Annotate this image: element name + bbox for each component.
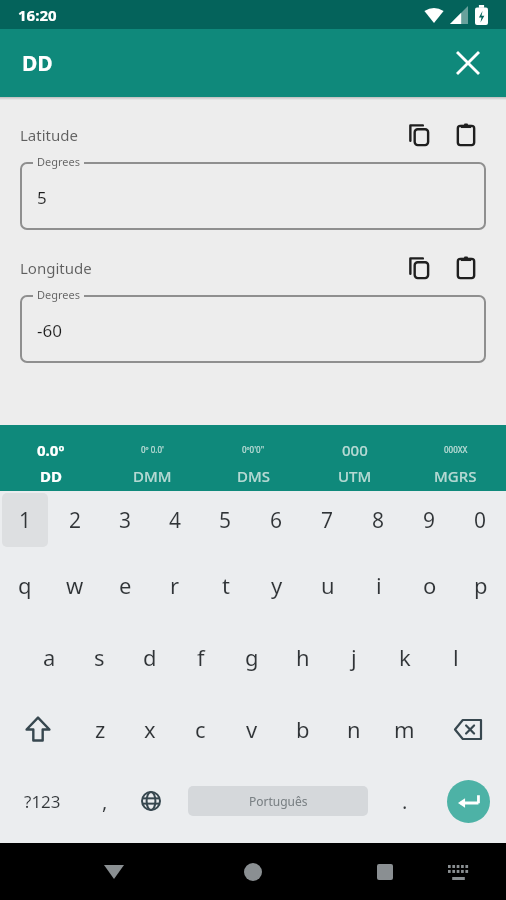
button[interactable]: n — [328, 693, 379, 765]
staticText: x — [144, 714, 156, 744]
button[interactable] — [371, 858, 399, 886]
button[interactable]: u — [302, 549, 353, 621]
button[interactable]: g — [226, 621, 277, 693]
staticText: w — [66, 570, 84, 600]
staticText: z — [95, 714, 106, 744]
button[interactable]: i — [353, 549, 404, 621]
button[interactable] — [100, 858, 128, 886]
button[interactable]: 0 — [455, 491, 506, 549]
staticText: i — [376, 570, 382, 600]
button[interactable] — [407, 123, 431, 147]
button[interactable]: ?123 — [0, 765, 84, 837]
staticText: r — [170, 570, 180, 600]
button[interactable] — [239, 858, 267, 886]
button[interactable]: 4 — [150, 491, 200, 549]
button[interactable]: r — [150, 549, 200, 621]
staticText: 2 — [69, 506, 82, 535]
button[interactable]: b — [277, 693, 328, 765]
button[interactable]: l — [430, 621, 481, 693]
button[interactable]: y — [251, 549, 302, 621]
staticText: DMS — [237, 466, 270, 485]
button[interactable] — [454, 123, 478, 147]
staticText: p — [474, 570, 488, 600]
staticText: 0.0º — [37, 440, 65, 459]
button[interactable]: s — [74, 621, 124, 693]
button[interactable]: 0º 0.0' — [102, 425, 203, 491]
button[interactable]: 6 — [251, 491, 302, 549]
button[interactable]: a — [24, 621, 74, 693]
staticText: 1 — [19, 506, 32, 535]
staticText: 8 — [372, 506, 385, 535]
staticText: DD — [40, 466, 62, 485]
button[interactable]: 0.0º — [0, 425, 102, 491]
staticText: k — [399, 642, 411, 672]
button[interactable]: p — [455, 549, 506, 621]
staticText: h — [296, 642, 310, 672]
button[interactable]: Português — [188, 765, 368, 837]
button[interactable]: w — [50, 549, 100, 621]
button[interactable]: c — [175, 693, 226, 765]
staticText: q — [18, 570, 32, 600]
staticText: n — [347, 714, 361, 744]
button[interactable]: 3 — [100, 491, 150, 549]
button[interactable]: j — [328, 621, 379, 693]
staticText: b — [296, 714, 310, 744]
button[interactable]: z — [75, 693, 125, 765]
button[interactable]: 000XX — [405, 425, 506, 491]
button[interactable]: f — [175, 621, 226, 693]
staticText: 0 — [474, 506, 487, 535]
staticText: g — [245, 642, 259, 672]
button[interactable]: 000 — [304, 425, 405, 491]
button[interactable]: . — [380, 765, 430, 837]
staticText: DMM — [133, 466, 172, 485]
staticText: 4 — [169, 506, 182, 535]
staticText: s — [94, 642, 105, 672]
staticText: u — [321, 570, 335, 600]
staticText: 000XX — [444, 444, 468, 455]
staticText: , — [102, 788, 108, 815]
button[interactable]: x — [125, 693, 175, 765]
button[interactable]: v — [226, 693, 277, 765]
button[interactable]: e — [100, 549, 150, 621]
button[interactable]: q — [0, 549, 50, 621]
button[interactable]: o — [404, 549, 455, 621]
staticText: 7 — [321, 506, 334, 535]
staticText: Degrees — [37, 287, 80, 302]
button[interactable]: 9 — [404, 491, 455, 549]
button[interactable]: m — [379, 693, 430, 765]
button[interactable]: k — [379, 621, 430, 693]
button[interactable] — [444, 858, 472, 886]
staticText: l — [453, 642, 459, 672]
staticText: . — [402, 788, 408, 815]
button[interactable]: 1 — [2, 493, 48, 547]
staticText: -60 — [37, 319, 62, 342]
button[interactable]: 8 — [353, 491, 404, 549]
button[interactable]: 2 — [50, 491, 100, 549]
button[interactable] — [407, 256, 431, 280]
button[interactable]: 0º0'0" — [203, 425, 304, 491]
button[interactable] — [454, 256, 478, 280]
button[interactable]: t — [200, 549, 251, 621]
staticText: 000 — [342, 440, 368, 459]
staticText: 9 — [423, 506, 436, 535]
button[interactable] — [444, 39, 492, 87]
button[interactable]: 5 — [200, 491, 251, 549]
button[interactable] — [430, 693, 506, 765]
button[interactable]: , — [84, 765, 126, 837]
staticText: 3 — [119, 506, 132, 535]
button[interactable]: h — [277, 621, 328, 693]
staticText: Degrees — [37, 154, 80, 169]
staticText: 0º0'0" — [242, 444, 265, 455]
staticText: 16:20 — [18, 5, 57, 25]
staticText: f — [197, 642, 205, 672]
staticText: ?123 — [24, 790, 61, 813]
button[interactable] — [126, 765, 176, 837]
staticText: y — [271, 570, 283, 600]
button[interactable]: d — [124, 621, 175, 693]
staticText: Português — [249, 793, 308, 809]
button[interactable]: 7 — [302, 491, 353, 549]
staticText: d — [143, 642, 157, 672]
button[interactable] — [430, 765, 506, 837]
staticText: 6 — [270, 506, 283, 535]
button[interactable] — [0, 693, 75, 765]
